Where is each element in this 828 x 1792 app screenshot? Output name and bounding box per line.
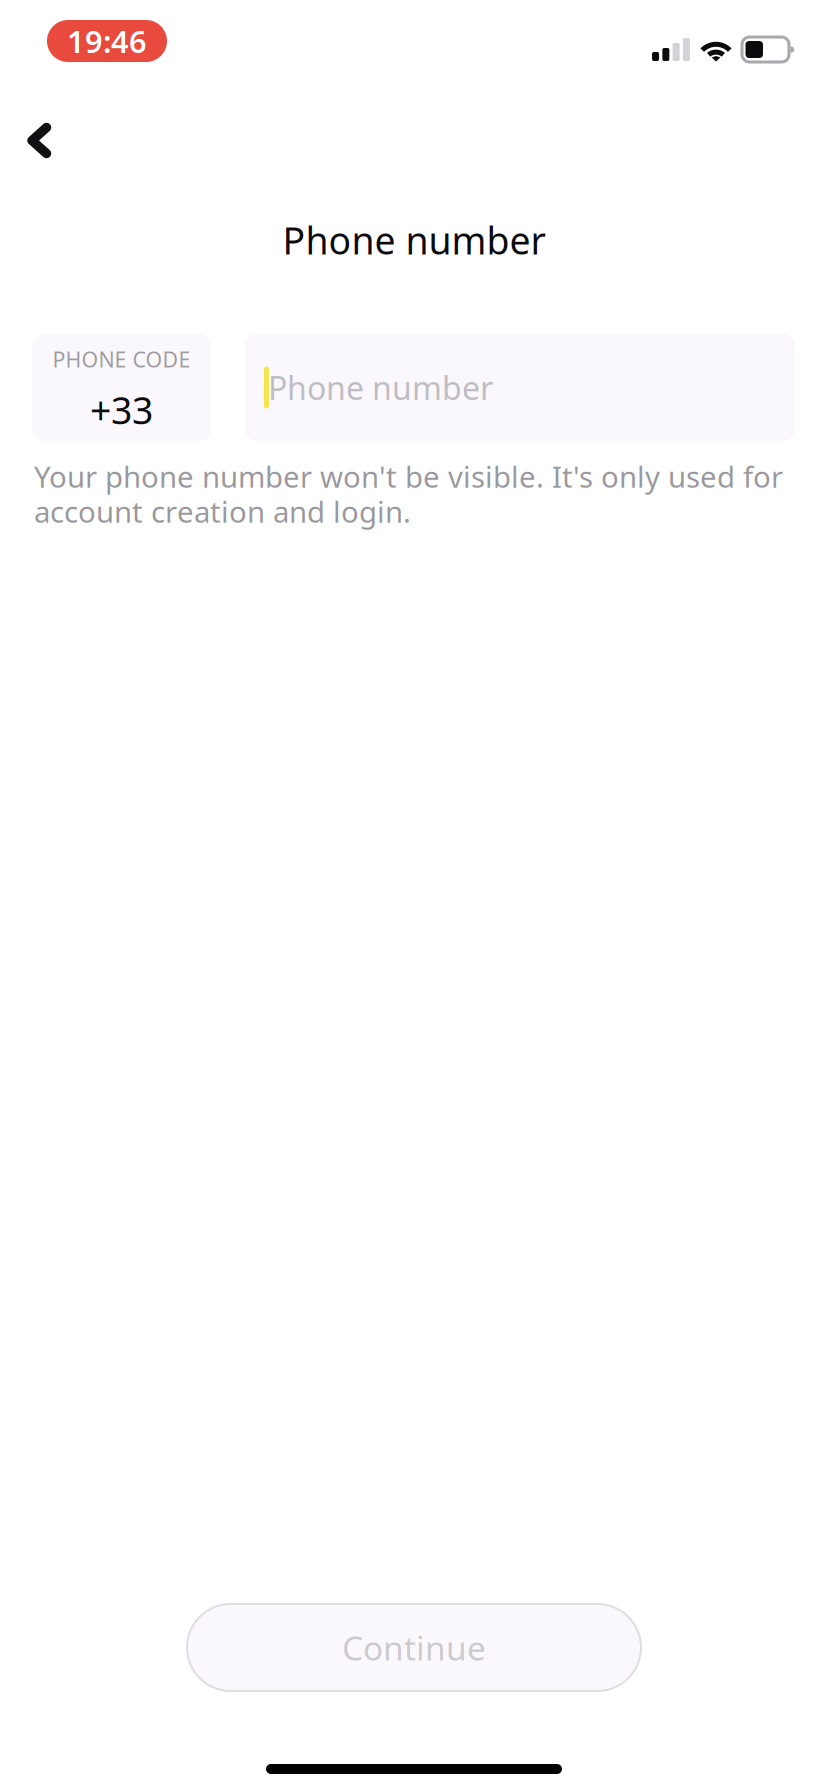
staticText: PHONE CODE <box>52 345 190 373</box>
button[interactable]: Back <box>0 99 79 176</box>
staticText: Phone number <box>268 366 493 409</box>
staticText: Phone number <box>282 215 545 265</box>
button[interactable]: Phone number <box>245 334 795 441</box>
staticText: Continue <box>342 1625 486 1670</box>
staticText: Your phone number won't be visible. It's… <box>34 457 783 531</box>
button[interactable]: PHONE CODE <box>32 334 211 441</box>
staticText: +33 <box>90 385 153 435</box>
button[interactable]: Continue <box>187 1604 641 1691</box>
staticText: 19:46 <box>67 21 147 61</box>
